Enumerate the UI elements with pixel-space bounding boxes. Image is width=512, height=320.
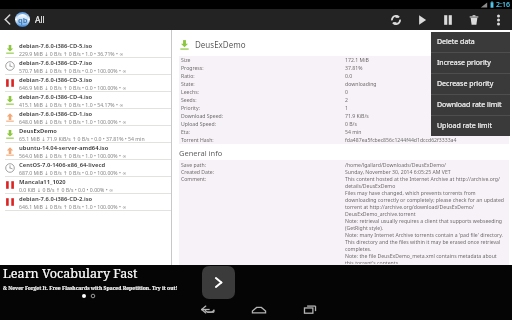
staticText: 71.9 KiB/s: [345, 112, 507, 119]
staticText: This content hosted at the Internet Arch…: [345, 175, 507, 264]
staticText: 648.0 MiB ↓ 0 B/s ↑ 0 B/s • 1.0 • 100.00…: [19, 118, 127, 125]
staticText: ubuntu-14.04-server-amd64.iso: [19, 144, 109, 152]
button[interactable]: More options: [487, 9, 510, 30]
staticText: Size: [181, 56, 345, 63]
staticText: 687.0 MiB ↓ 0 B/s ↑ 0 B/s • 0.0 • 100.00…: [19, 169, 127, 176]
staticText: /home/lgallard/Downloads/DeusExDemo/: [345, 161, 507, 168]
button[interactable]: CentOS-7.0-1406-x86_64-livecd: [0, 160, 171, 176]
staticText: downloading: [345, 80, 507, 87]
staticText: 54 min: [345, 128, 507, 135]
button[interactable]: DeusExDemo: [0, 126, 171, 142]
button[interactable]: debian-7.6.0-i386-CD-7.iso: [0, 58, 171, 74]
staticText: 0.0 KiB ↓ 0 B/s ↑ 0 B/s • 0.0 • 0.00% • …: [19, 186, 114, 193]
staticText: DeusExDemo: [19, 127, 57, 135]
button[interactable]: debian-7.6.0-i386-CD-3.iso: [0, 75, 171, 91]
staticText: qb: [18, 15, 28, 25]
staticText: 37.81%: [345, 64, 507, 71]
staticText: Torrent Hash:: [181, 136, 345, 143]
staticText: debian-7.6.0-i386-CD-2.iso: [19, 195, 93, 203]
staticText: Decrease priority: [437, 79, 494, 89]
staticText: Learn Vocabulary Fast: [3, 265, 138, 282]
button[interactable]: Delete: [461, 9, 487, 30]
staticText: Progress:: [181, 64, 345, 71]
staticText: 646.1 MiB ↓ 0 B/s ↑ 0 B/s • 1.0 • 100.00…: [19, 203, 127, 210]
staticText: DeusExDemo: [195, 39, 246, 50]
staticText: & Never Forget It. Free Flashcards with …: [3, 285, 178, 292]
staticText: Save path:: [181, 161, 345, 168]
staticText: General info: [179, 148, 223, 158]
button[interactable]: Back: [191, 297, 225, 320]
button[interactable]: Delete data: [431, 32, 510, 52]
button[interactable]: Start: [409, 9, 435, 30]
button[interactable]: Recent apps: [293, 297, 327, 320]
button[interactable]: debian-7.6.0-i386-CD-1.iso: [0, 109, 171, 125]
staticText: Seeds:: [181, 96, 345, 103]
button[interactable]: Refresh: [383, 9, 409, 30]
staticText: 0.0: [345, 72, 507, 79]
staticText: Download Speed:: [181, 112, 345, 119]
staticText: Delete data: [437, 37, 475, 47]
staticText: 1: [345, 104, 507, 111]
staticText: debian-7.6.0-i386-CD-4.iso: [19, 93, 93, 101]
staticText: fda487ea5fcbec856c1244f44d1dccd62f3333a4: [345, 136, 507, 143]
button[interactable]: debian-7.6.0-i386-CD-4.iso: [0, 92, 171, 108]
staticText: State:: [181, 80, 345, 87]
button[interactable]: Pause: [435, 9, 461, 30]
button[interactable]: Home: [242, 297, 276, 320]
staticText: All: [35, 14, 45, 26]
staticText: Comment:: [181, 175, 345, 182]
staticText: 229.9 MiB ↓ 0 B/s ↑ 0 B/s • 1.0 • 36.71%…: [19, 50, 124, 57]
staticText: debian-7.6.0-i386-CD-5.iso: [19, 42, 93, 50]
staticText: Ratio:: [181, 72, 345, 79]
button[interactable]: ubuntu-14.04-server-amd64.iso: [0, 143, 171, 159]
staticText: 0: [345, 88, 507, 95]
staticText: Upload rate limit: [437, 121, 492, 131]
staticText: debian-7.6.0-i386-CD-7.iso: [19, 59, 93, 67]
staticText: 0 B/s: [345, 120, 507, 127]
staticText: 415.1 MiB ↓ 0 B/s ↑ 0 B/s • 1.0 • 54.17%…: [19, 101, 124, 108]
button[interactable]: Navigate up: [0, 9, 14, 30]
staticText: 2: [345, 96, 507, 103]
staticText: Leechs:: [181, 88, 345, 95]
staticText: Download rate limit: [437, 100, 502, 110]
staticText: 172.1 MiB: [345, 56, 507, 63]
button[interactable]: Next ad: [202, 266, 235, 299]
button[interactable]: Increase priority: [431, 53, 510, 73]
staticText: Upload Speed:: [181, 120, 345, 127]
staticText: Eta:: [181, 128, 345, 135]
staticText: Mancala11_1020: [19, 178, 66, 186]
button[interactable]: Decrease priority: [431, 74, 510, 94]
staticText: Increase priority: [437, 58, 491, 68]
button[interactable]: Upload rate limit: [431, 116, 510, 136]
staticText: Created Date:: [181, 168, 345, 175]
staticText: CentOS-7.0-1406-x86_64-livecd: [19, 161, 106, 169]
staticText: 564.0 MiB ↓ 0 B/s ↑ 0 B/s • 1.0 • 100.00…: [19, 152, 127, 159]
staticText: Priority:: [181, 104, 345, 111]
button[interactable]: Download rate limit: [431, 95, 510, 115]
staticText: 65.1 MiB ↓ 71.9 KiB/s ↑ 0 B/s • 0.0 • 37…: [19, 135, 145, 142]
staticText: 2:16: [496, 0, 510, 9]
staticText: debian-7.6.0-i386-CD-3.iso: [19, 76, 93, 84]
button[interactable]: debian-7.6.0-i386-CD-2.iso: [0, 194, 171, 210]
staticText: 646.9 MiB ↓ 0 B/s ↑ 0 B/s • 0.0 • 100.00…: [19, 84, 127, 91]
staticText: 570.7 MiB ↓ 0 B/s ↑ 0 B/s • 0.0 • 100.00…: [19, 67, 127, 74]
staticText: debian-7.6.0-i386-CD-1.iso: [19, 110, 93, 118]
staticText: Sunday, November 30, 2014 6:05:25 AM VET: [345, 168, 507, 175]
button[interactable]: Mancala11_1020: [0, 177, 171, 193]
button[interactable]: debian-7.6.0-i386-CD-5.iso: [0, 41, 171, 57]
